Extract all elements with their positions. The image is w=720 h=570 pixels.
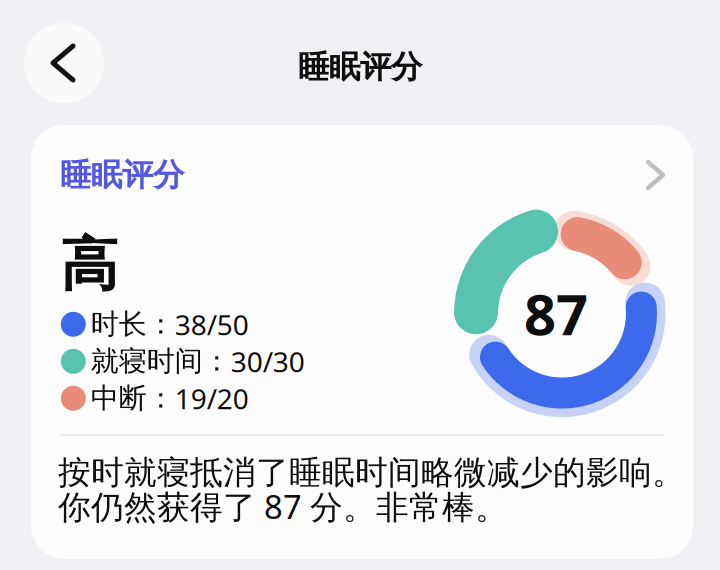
staticText: 时长： bbox=[91, 307, 175, 342]
staticText: 睡眠评分 bbox=[298, 47, 422, 87]
staticText: 87 bbox=[524, 275, 588, 352]
staticText: 就寝时间： bbox=[91, 344, 231, 379]
staticText: 19/20 bbox=[175, 379, 249, 417]
staticText: 睡眠评分 bbox=[60, 155, 184, 195]
staticText: 中断： bbox=[91, 381, 175, 416]
staticText: 38/50 bbox=[175, 305, 249, 343]
button[interactable]: 睡眠评分 bbox=[31, 145, 693, 205]
staticText: 按时就寝抵消了睡眠时间略微减少的影响。 bbox=[58, 452, 685, 493]
staticText: 30/30 bbox=[231, 342, 305, 380]
button[interactable]: 返回 bbox=[24, 23, 104, 103]
staticText: 高 bbox=[60, 228, 118, 302]
staticText: 你仍然获得了 87 分。非常棒。 bbox=[58, 484, 508, 529]
